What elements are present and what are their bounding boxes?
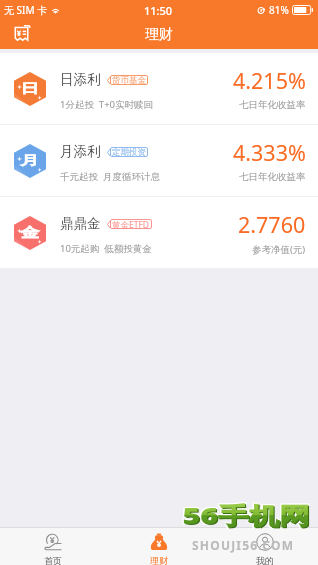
staticText: 1分起投 T+0实时赎回 xyxy=(60,98,154,111)
staticText: 货币基金 xyxy=(112,75,146,85)
staticText: 金 xyxy=(21,225,39,241)
button[interactable]: 我的 xyxy=(212,528,318,565)
staticText: 千元起投 月度循环计息 xyxy=(60,170,160,183)
staticText: 4.333% xyxy=(233,138,306,167)
staticText: 56手机网 xyxy=(184,498,312,530)
staticText: 56手机网 xyxy=(182,499,310,531)
button[interactable]: 日 xyxy=(0,53,318,124)
staticText: 2.7760 xyxy=(238,210,306,239)
button[interactable]: 月 xyxy=(0,125,318,196)
staticText: 10元起购 低额投黄金 xyxy=(60,242,152,255)
staticText: 56手机网 xyxy=(184,500,312,532)
staticText: 我的 xyxy=(256,555,274,565)
staticText: 七日年化收益率 xyxy=(239,171,306,183)
staticText: 日添利 xyxy=(60,71,101,88)
staticText: 首页 xyxy=(44,555,62,565)
button[interactable]: 金 xyxy=(0,197,318,268)
staticText: 月 xyxy=(21,153,39,169)
staticText: 参考净值(元) xyxy=(252,243,306,256)
staticText: 56手机网 xyxy=(184,500,312,532)
staticText: 4.215% xyxy=(233,66,306,95)
staticText: 56手机网 xyxy=(181,500,309,532)
staticText: 无 SIM 卡 xyxy=(4,3,48,17)
button[interactable]: 首页 xyxy=(0,528,106,565)
staticText: 日 xyxy=(21,81,39,97)
staticText: 七日年化收益率 xyxy=(239,99,306,111)
staticText: 鼎鼎金 xyxy=(60,215,101,232)
staticText: 黄金ETFD xyxy=(112,219,150,229)
staticText: 理财 xyxy=(150,555,168,565)
button[interactable]: 账单 xyxy=(10,23,34,47)
button[interactable]: 理财 xyxy=(106,528,212,565)
staticText: SHOUJI56.COM xyxy=(192,537,295,553)
staticText: 11:50 xyxy=(144,3,173,18)
staticText: 定期投资 xyxy=(112,147,146,157)
staticText: 理财 xyxy=(145,26,173,44)
staticText: 56手机网 xyxy=(181,498,309,530)
staticText: 81% xyxy=(269,3,289,17)
staticText: 月添利 xyxy=(60,143,101,160)
